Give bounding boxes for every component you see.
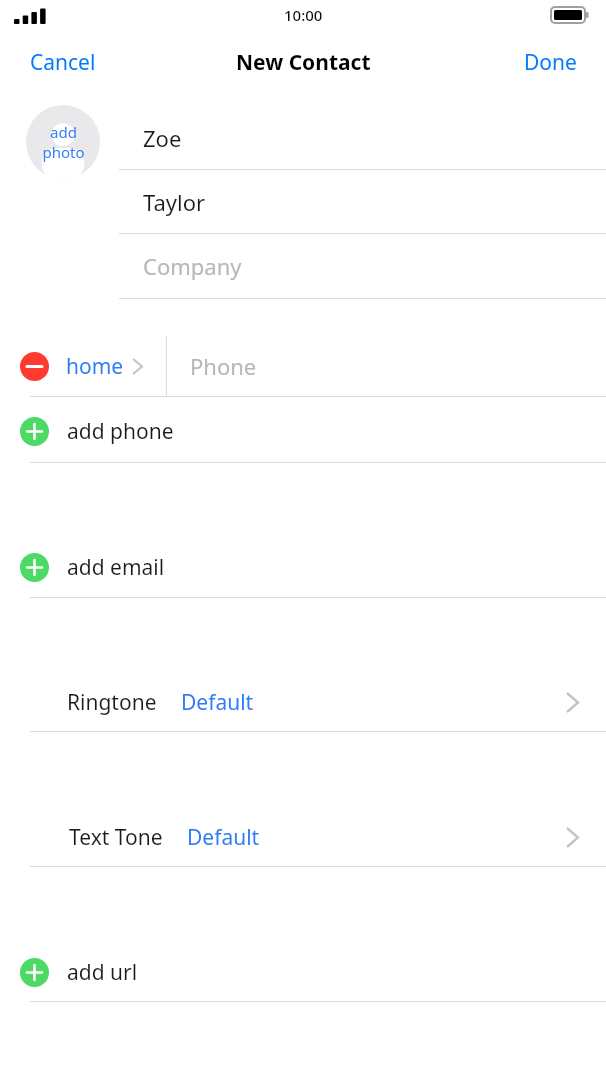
button[interactable]: Ringtone	[0, 672, 606, 732]
button[interactable]: Taylor	[119, 170, 606, 234]
button[interactable]: add email	[0, 537, 606, 597]
button[interactable]: Phone	[167, 336, 606, 396]
staticText: Taylor	[143, 187, 206, 217]
staticText: home	[66, 352, 124, 381]
button[interactable]: add url	[0, 942, 606, 1002]
button[interactable]: Done	[516, 42, 585, 83]
staticText: Ringtone	[67, 688, 157, 717]
staticText: add phone	[67, 417, 174, 446]
button[interactable]: Zoe	[119, 106, 606, 170]
button[interactable]: Add photo	[26, 105, 100, 179]
staticText: Done	[524, 48, 577, 77]
staticText: 10:00	[284, 5, 323, 25]
staticText: Zoe	[143, 123, 182, 153]
staticText: Default	[187, 823, 260, 852]
staticText: Default	[181, 688, 254, 717]
staticText: Cancel	[30, 48, 96, 77]
button[interactable]: Remove phone	[20, 352, 49, 381]
staticText: New Contact	[236, 48, 371, 77]
staticText: photo	[42, 142, 85, 162]
button[interactable]: Cancel	[22, 42, 104, 83]
button[interactable]: add phone	[0, 401, 606, 461]
staticText: add url	[67, 958, 138, 987]
staticText: add email	[67, 553, 165, 582]
staticText: Phone	[190, 351, 257, 381]
staticText: add	[50, 122, 77, 142]
button[interactable]: Company	[119, 234, 606, 298]
button[interactable]: home	[60, 336, 166, 396]
staticText: Company	[143, 251, 242, 281]
staticText: Text Tone	[69, 823, 163, 852]
button[interactable]: Text Tone	[0, 807, 606, 867]
